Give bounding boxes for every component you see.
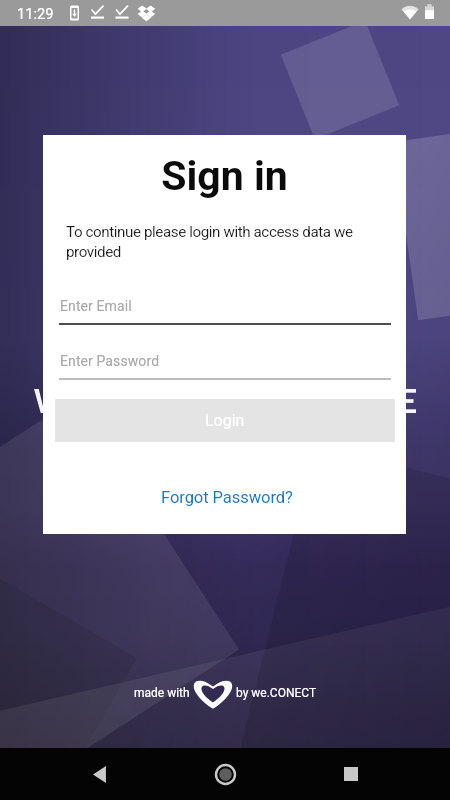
button[interactable]: Back <box>74 748 126 800</box>
button[interactable]: Enter Password <box>59 353 391 380</box>
staticText: To continue please login with access dat… <box>66 223 386 261</box>
button[interactable]: Forgot Password? <box>43 483 406 517</box>
staticText: Login <box>205 411 245 430</box>
staticText: Enter Password <box>60 353 160 369</box>
staticText: made with <box>134 686 190 700</box>
button[interactable]: Home <box>199 748 251 800</box>
staticText: Enter Email <box>60 298 132 314</box>
button[interactable]: Recent apps <box>325 748 377 800</box>
staticText: by we.CONECT <box>236 686 317 700</box>
staticText: Forgot Password? <box>161 488 293 507</box>
staticText: 11:29 <box>17 5 54 22</box>
staticText: Sign in <box>43 152 406 200</box>
button[interactable]: Enter Email <box>59 298 391 325</box>
